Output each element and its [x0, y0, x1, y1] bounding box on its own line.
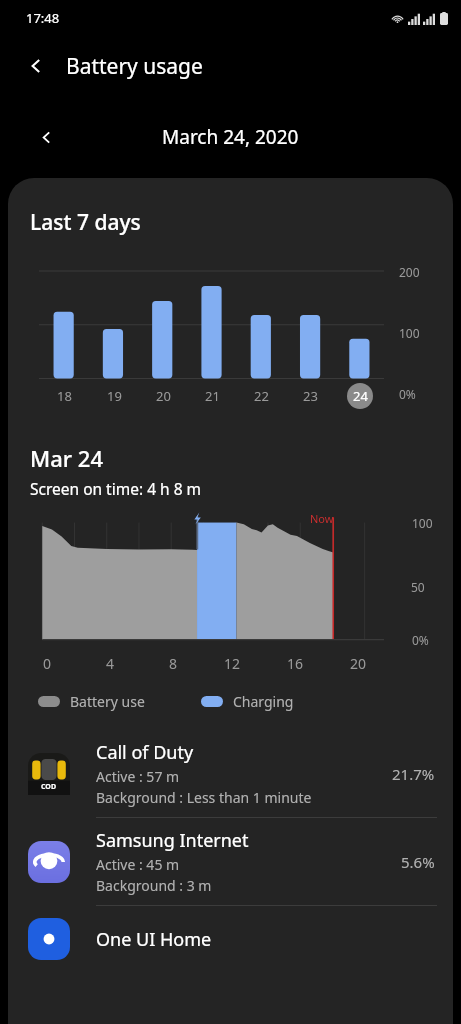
- staticText: 23: [303, 387, 318, 405]
- staticText: One UI Home: [96, 927, 212, 952]
- staticText: 200: [399, 264, 420, 280]
- button[interactable]: Previous day: [26, 117, 66, 157]
- staticText: 4: [106, 654, 115, 673]
- staticText: 17:48: [26, 9, 60, 27]
- staticText: 0: [43, 654, 52, 673]
- staticText: Active : 57 m: [96, 767, 180, 786]
- staticText: 21: [205, 387, 220, 405]
- staticText: Battery use: [70, 692, 145, 711]
- staticText: 12: [224, 654, 241, 673]
- staticText: 21.7%: [392, 764, 435, 784]
- staticText: Background : 3 m: [96, 876, 212, 895]
- button[interactable]: Samsung Internet: [8, 818, 453, 905]
- staticText: COD: [41, 782, 57, 792]
- staticText: Samsung Internet: [96, 828, 249, 853]
- staticText: 0%: [399, 386, 416, 402]
- staticText: 16: [287, 654, 304, 673]
- staticText: 50: [411, 579, 425, 595]
- staticText: 20: [350, 654, 367, 673]
- staticText: 18: [57, 387, 72, 405]
- staticText: 24: [353, 387, 368, 405]
- staticText: Screen on time: 4 h 8 m: [30, 478, 202, 499]
- staticText: Background : Less than 1 minute: [96, 788, 312, 807]
- staticText: Mar 24: [30, 443, 103, 473]
- staticText: 100: [399, 325, 420, 341]
- button[interactable]: One UI Home: [8, 906, 453, 972]
- staticText: Charging: [233, 692, 294, 711]
- staticText: March 24, 2020: [162, 124, 299, 150]
- staticText: Last 7 days: [30, 208, 141, 237]
- staticText: 8: [169, 654, 178, 673]
- staticText: 5.6%: [401, 852, 435, 872]
- staticText: 0%: [412, 632, 429, 648]
- staticText: 19: [107, 387, 122, 405]
- staticText: 22: [254, 387, 269, 405]
- staticText: Battery usage: [66, 52, 203, 81]
- staticText: Active : 45 m: [96, 855, 180, 874]
- button[interactable]: Back: [14, 44, 58, 88]
- staticText: Call of Duty: [96, 740, 194, 765]
- staticText: 20: [156, 387, 171, 405]
- staticText: Now: [310, 511, 334, 526]
- staticText: 100: [412, 515, 433, 531]
- button[interactable]: COD: [8, 730, 453, 817]
